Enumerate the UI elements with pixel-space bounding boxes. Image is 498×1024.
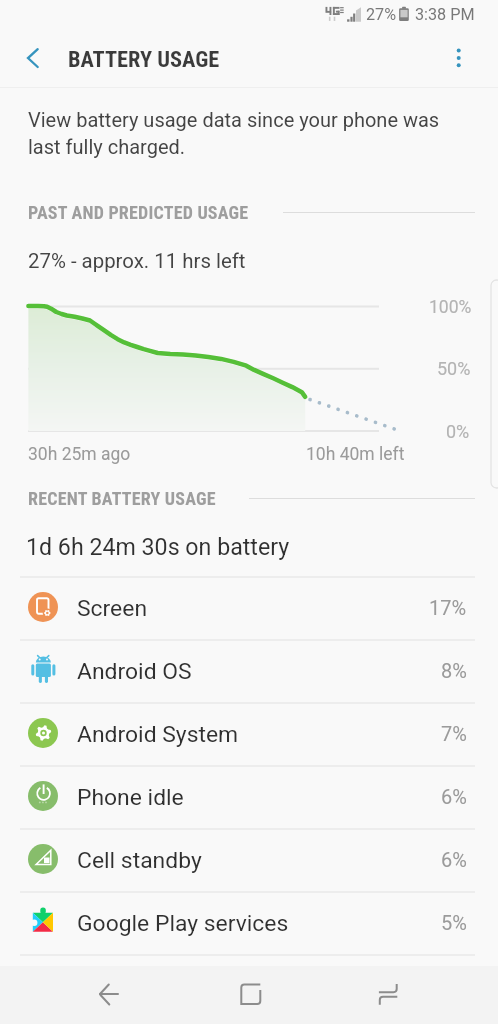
button[interactable]: Home [216,966,286,1024]
staticText: 30h 25m ago [28,444,131,465]
staticText: 27% [366,5,397,24]
staticText: BATTERY USAGE [68,46,220,72]
staticText: Phone idle [77,784,184,811]
button[interactable]: Google Play services [0,891,498,954]
staticText: 17% [429,596,467,619]
staticText: 6% [441,848,467,871]
staticText: Screen [77,595,148,622]
staticText: PAST AND PREDICTED USAGE [28,202,249,223]
staticText: Google Play services [77,910,289,937]
staticText: 1d 6h 24m 30s on battery [26,533,290,560]
staticText: last fully charged. [28,135,186,158]
staticText: 0% [446,421,470,442]
button[interactable]: Navigate up [10,36,56,82]
staticText: Android System [77,721,239,748]
staticText: Android OS [77,658,192,685]
staticText: 7% [441,722,467,745]
staticText: Cell standby [77,847,202,874]
button[interactable]: Back [73,966,143,1024]
staticText: RECENT BATTERY USAGE [28,488,216,509]
staticText: 8% [441,659,467,682]
staticText: 50% [437,358,471,379]
button[interactable]: Android System [0,702,498,765]
staticText: 6% [441,785,467,808]
button[interactable]: Phone idle [0,765,498,828]
staticText: View battery usage data since your phone… [28,108,440,131]
button[interactable]: Screen [0,576,498,639]
button[interactable]: More options [437,35,482,80]
staticText: 100% [429,297,472,318]
staticText: 10h 40m left [306,444,405,465]
button[interactable]: Recent apps [355,966,425,1024]
button[interactable]: Cell standby [0,828,498,891]
staticText: 3:38 PM [415,5,475,24]
staticText: 27% - approx. 11 hrs left [28,249,246,273]
button[interactable]: Android OS [0,639,498,702]
staticText: 5% [441,911,467,934]
